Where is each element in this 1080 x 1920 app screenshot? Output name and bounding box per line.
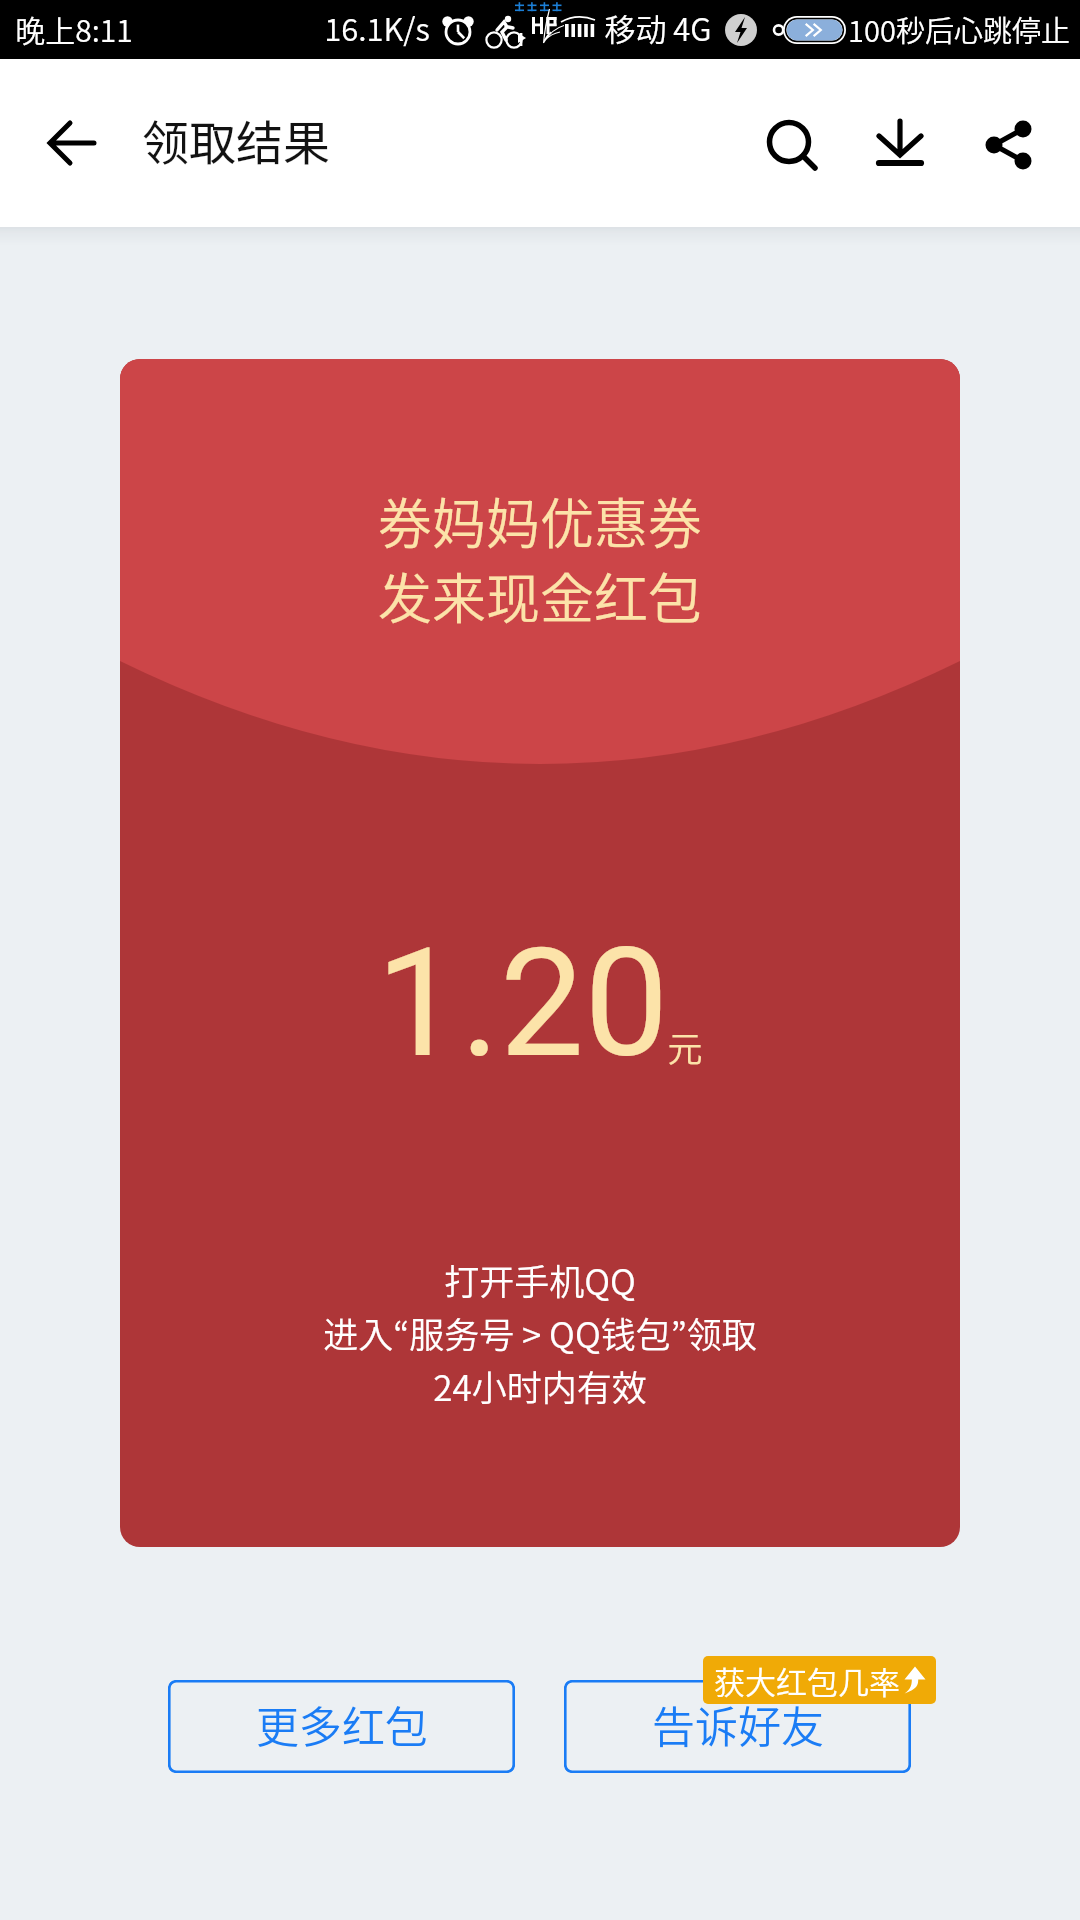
button[interactable]: Search: [747, 101, 839, 193]
staticText: 晚上8:11: [15, 7, 133, 50]
staticText: 100秒后心跳停止: [848, 8, 1070, 50]
button[interactable]: Share: [962, 99, 1054, 191]
staticText: 16.1K/s: [324, 5, 430, 50]
button[interactable]: 券妈妈优惠券: [120, 359, 960, 1547]
button[interactable]: Download: [854, 97, 946, 189]
staticText: 移动 4G: [604, 5, 712, 50]
staticText: 领取结果: [142, 105, 330, 173]
staticText: 进入“服务号 > QQ钱包”领取: [323, 1307, 757, 1358]
staticText: 打开手机QQ: [444, 1254, 636, 1305]
staticText: 24小时内有效: [433, 1360, 647, 1411]
button[interactable]: 更多红包: [168, 1680, 515, 1773]
staticText: 更多红包: [256, 1693, 428, 1755]
button[interactable]: 告诉好友: [564, 1680, 911, 1773]
staticText: 获大红包几率: [714, 1658, 900, 1703]
button[interactable]: 获大红包几率: [703, 1656, 936, 1704]
staticText: 1.20: [376, 916, 669, 1092]
staticText: 发来现金红包: [378, 556, 702, 634]
button[interactable]: Back: [26, 97, 118, 189]
staticText: 告诉好友: [652, 1693, 824, 1755]
staticText: 券妈妈优惠券: [378, 481, 702, 559]
staticText: 元: [667, 1021, 703, 1072]
